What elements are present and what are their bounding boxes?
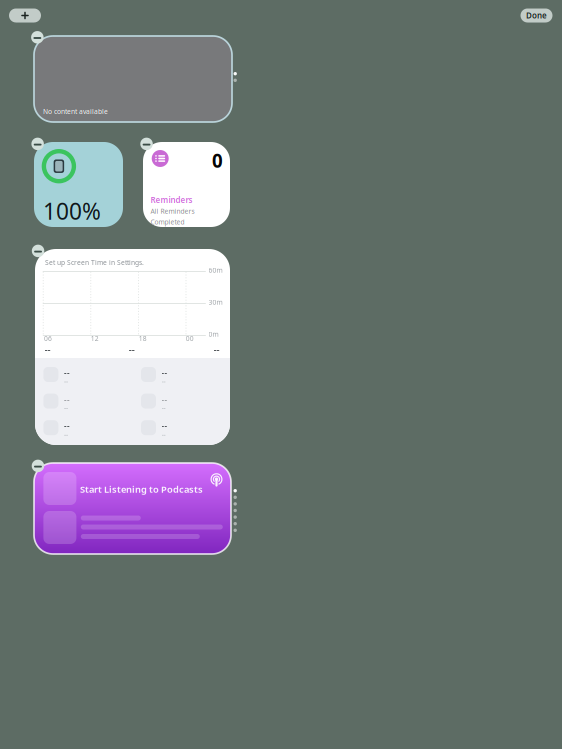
staticText: -- xyxy=(162,367,168,378)
staticText: No content available xyxy=(43,107,108,116)
staticText: -- xyxy=(129,343,135,356)
staticText: Start Listening to Podcasts xyxy=(80,483,203,495)
button[interactable]: Remove widget xyxy=(32,460,44,472)
button[interactable]: Remove widget xyxy=(31,31,44,44)
staticText: -- xyxy=(64,421,70,431)
staticText: 100% xyxy=(43,196,101,226)
staticText: Reminders xyxy=(150,194,192,205)
staticText: 12 xyxy=(91,334,99,343)
staticText: Completed xyxy=(150,217,184,226)
button[interactable]: Remove widget xyxy=(140,138,153,150)
staticText: -- xyxy=(64,403,68,412)
button[interactable]: Start Listening to Podcasts xyxy=(34,463,231,554)
button[interactable]: 100% xyxy=(34,142,123,227)
button[interactable]: Done xyxy=(520,8,552,22)
staticText: 0 xyxy=(212,148,223,173)
button[interactable]: Remove widget xyxy=(32,245,44,257)
staticText: -- xyxy=(162,394,168,405)
staticText: Done xyxy=(526,10,547,21)
staticText: -- xyxy=(45,343,51,356)
button[interactable]: No content available xyxy=(34,36,232,122)
staticText: -- xyxy=(162,430,166,439)
staticText: -- xyxy=(64,394,70,405)
staticText: -- xyxy=(162,403,166,412)
staticText: -- xyxy=(162,421,168,431)
button[interactable]: Remove widget xyxy=(31,138,44,150)
staticText: 60m xyxy=(208,266,222,275)
staticText: -- xyxy=(64,367,70,378)
button[interactable]: Set up Screen Time in Settings. xyxy=(35,249,230,445)
staticText: -- xyxy=(213,343,219,356)
staticText: 0m xyxy=(208,330,218,339)
button[interactable]: 0 xyxy=(143,142,230,227)
button[interactable]: Add widget xyxy=(9,8,41,22)
staticText: -- xyxy=(64,376,68,385)
staticText: 30m xyxy=(208,298,222,307)
staticText: -- xyxy=(64,430,68,439)
staticText: All Reminders xyxy=(150,207,194,216)
staticText: 18 xyxy=(139,334,147,343)
staticText: Set up Screen Time in Settings. xyxy=(45,258,144,267)
staticText: -- xyxy=(162,376,166,385)
staticText: 00 xyxy=(186,334,194,343)
staticText: 06 xyxy=(44,334,52,343)
